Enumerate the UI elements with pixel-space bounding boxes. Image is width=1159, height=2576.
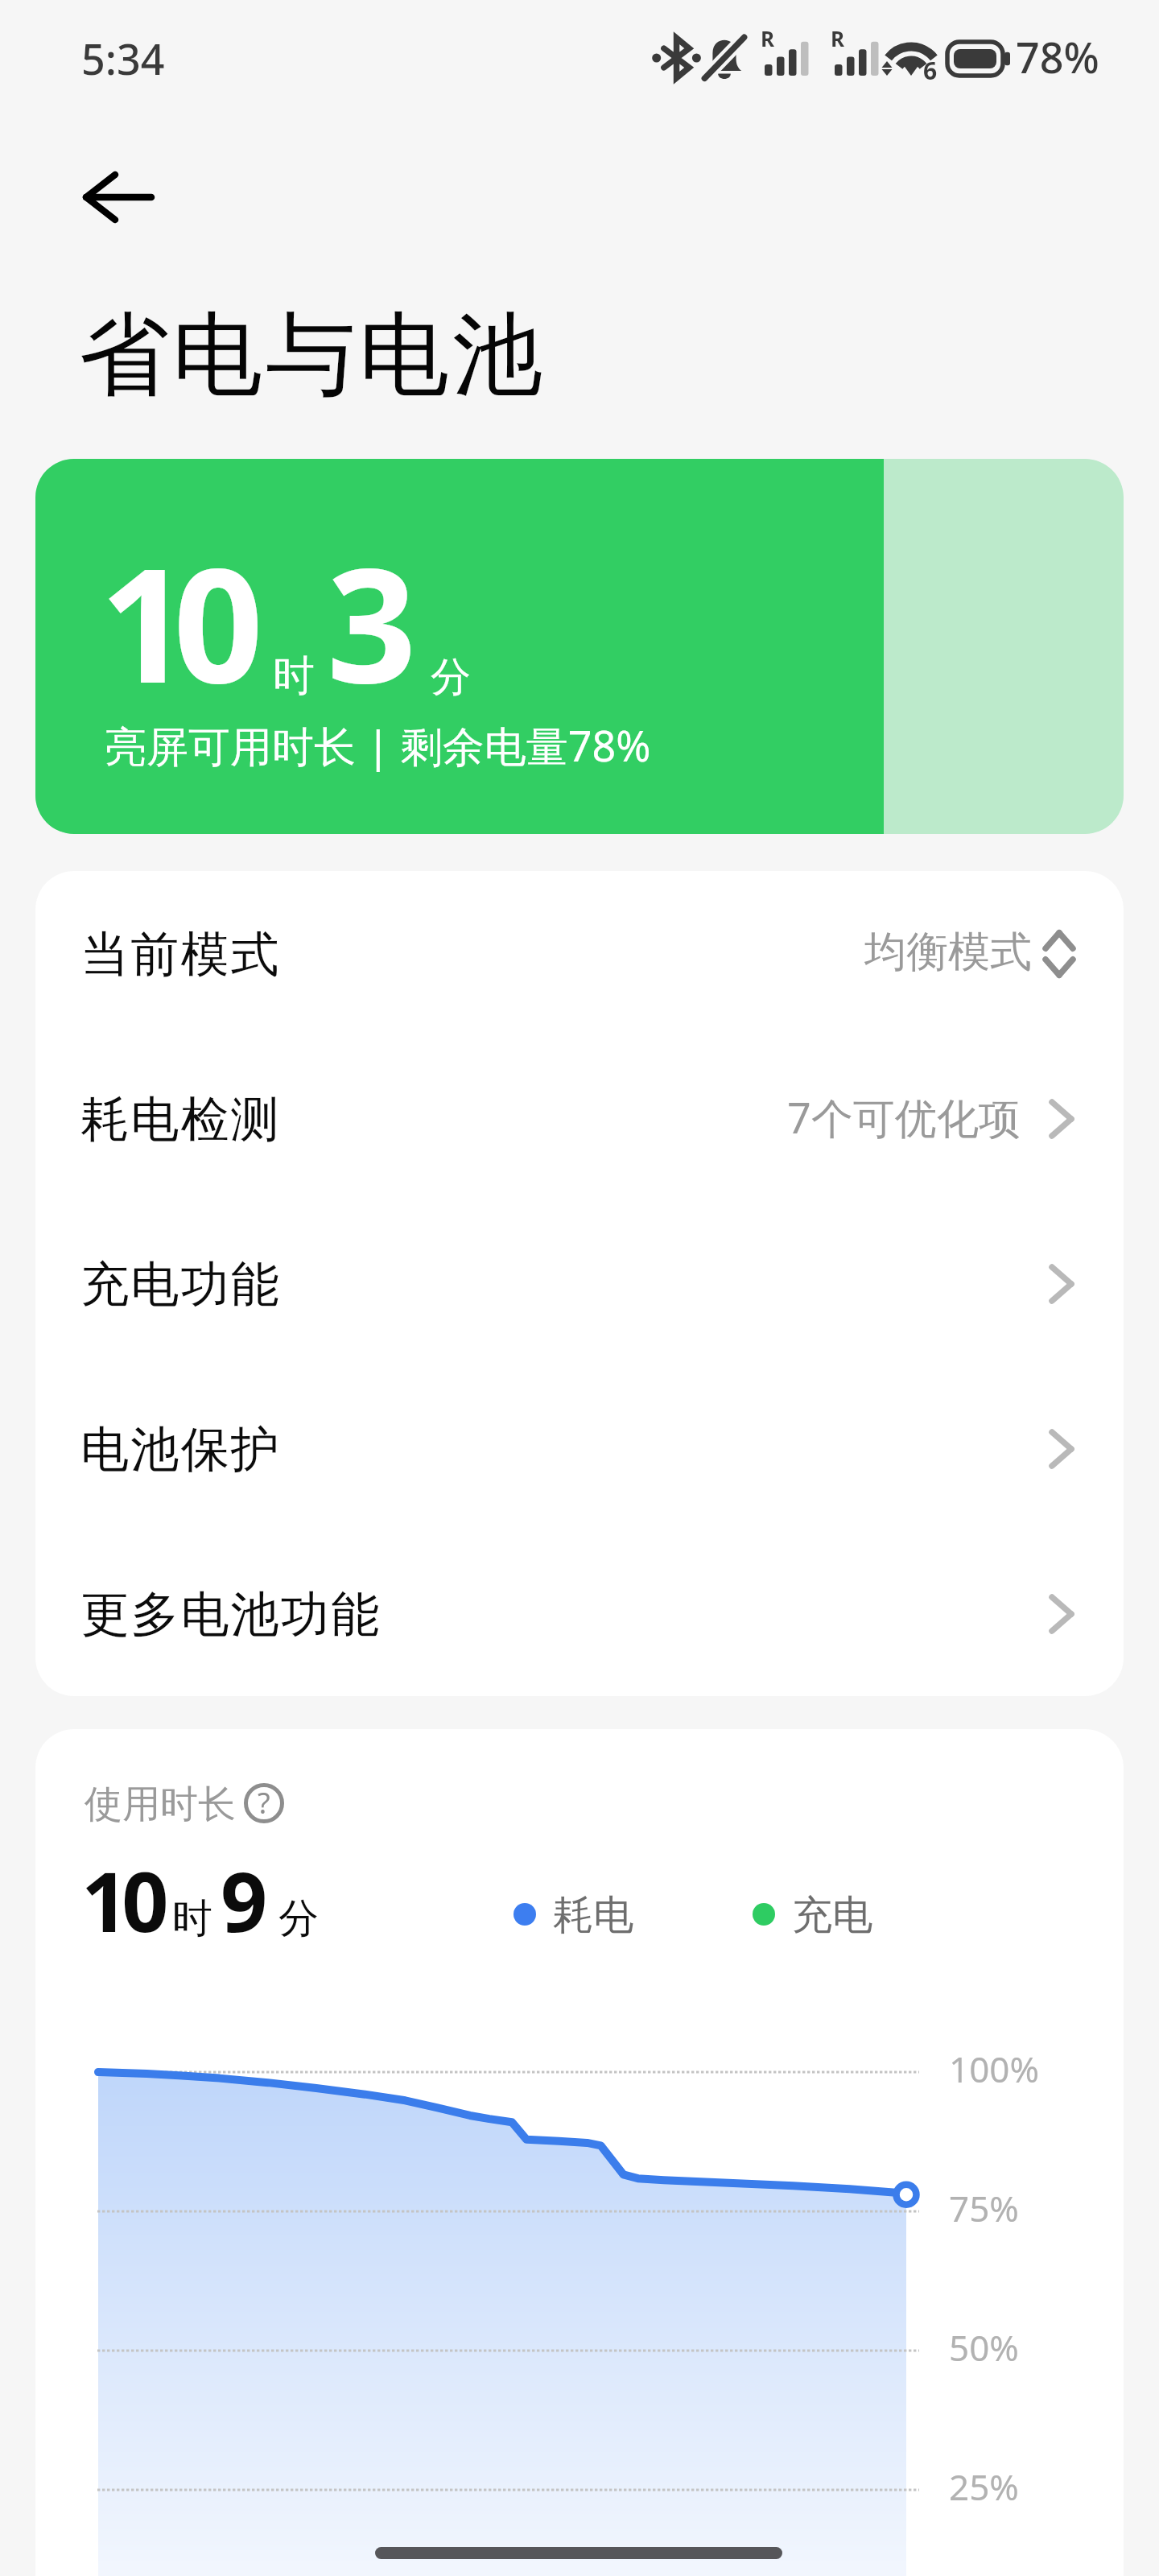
staticText: 10 [81, 1844, 163, 1956]
staticText: 100% [949, 2045, 1040, 2093]
staticText: 25% [949, 2462, 1019, 2511]
staticText: 耗电 [553, 1890, 633, 1941]
button[interactable]: 耗电检测 [35, 1036, 1124, 1201]
staticText: 时 [172, 1893, 212, 1944]
button[interactable]: 更多电池功能 [35, 1531, 1124, 1696]
staticText: R [831, 24, 845, 52]
staticText: 均衡模式 [864, 926, 1032, 979]
staticText: 75% [949, 2184, 1019, 2232]
staticText: 7个可优化项 [787, 1088, 1021, 1146]
staticText: ? [258, 1783, 270, 1823]
button[interactable]: 10 [35, 459, 1124, 834]
staticText: 时 [273, 650, 315, 703]
staticText: 9 [221, 1844, 268, 1956]
staticText: 10 [100, 515, 248, 729]
staticText: 50% [949, 2323, 1019, 2372]
staticText: 充电功能 [80, 1254, 281, 1315]
staticText: 更多电池功能 [80, 1584, 382, 1645]
button[interactable]: 电池保护 [35, 1366, 1124, 1531]
staticText: 电池保护 [80, 1419, 281, 1480]
staticText: 分 [278, 1893, 319, 1944]
staticText: 5:34 [81, 30, 165, 87]
staticText: 78% [1016, 28, 1099, 85]
button[interactable]: Help about screen-on time [244, 1783, 284, 1823]
staticText: 分 [431, 652, 471, 703]
staticText: 充电 [792, 1890, 872, 1941]
staticText: 当前模式 [80, 924, 281, 985]
staticText: 6 [923, 54, 938, 87]
button[interactable]: 当前模式 [35, 871, 1124, 1036]
staticText: 耗电检测 [80, 1089, 281, 1150]
button[interactable]: Back [45, 143, 190, 251]
staticText: 3 [327, 515, 417, 729]
staticText: 使用时长 [85, 1781, 236, 1828]
button[interactable]: 充电功能 [35, 1201, 1124, 1366]
staticText: R [761, 24, 775, 52]
staticText: 亮屏可用时长 | 剩余电量78% [105, 716, 651, 774]
staticText: 省电与电池 [77, 299, 544, 412]
